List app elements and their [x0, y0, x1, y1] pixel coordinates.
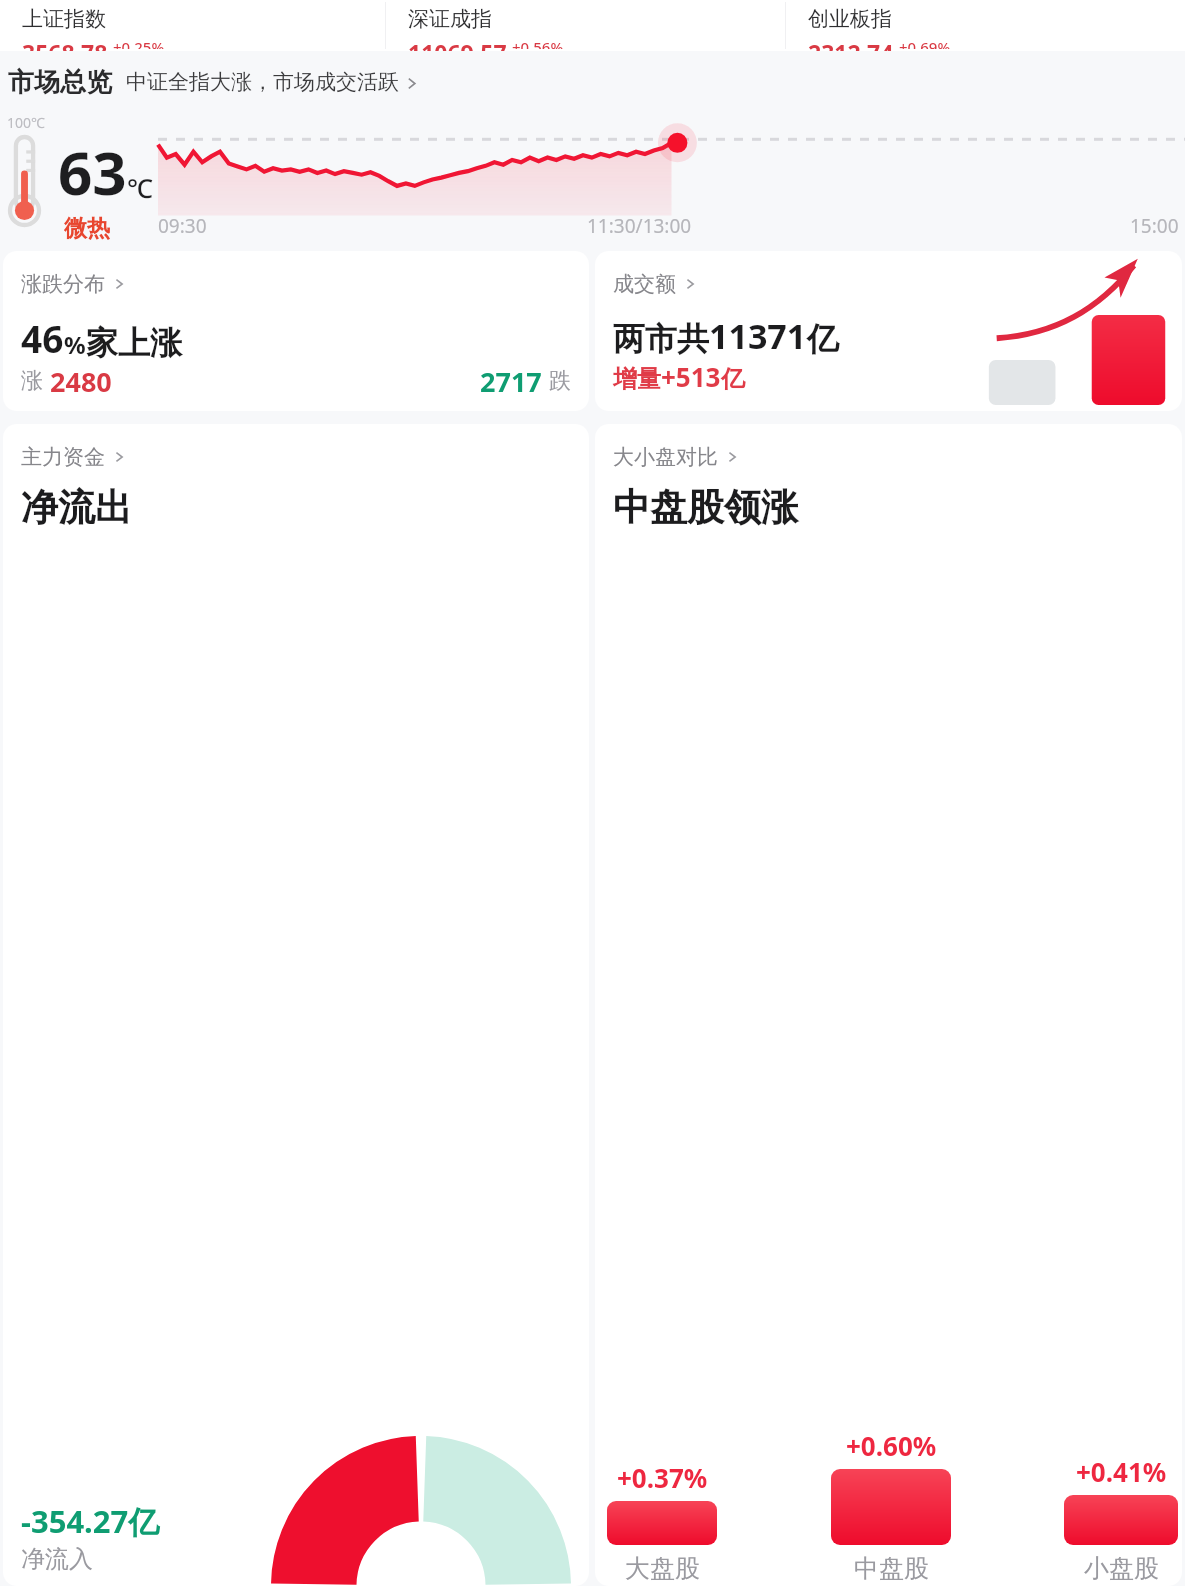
staticText: 2717: [480, 363, 542, 395]
staticText: 微热: [64, 214, 110, 241]
staticText: 15:00: [1130, 213, 1179, 239]
staticText: 上证指数: [22, 6, 106, 32]
staticText: 大盘股: [625, 1553, 700, 1584]
staticText: 2480: [50, 363, 112, 395]
staticText: 小盘股: [1084, 1553, 1159, 1584]
staticText: 市场总览: [8, 66, 112, 99]
staticText: 深证成指: [408, 6, 492, 32]
staticText: 家上涨: [86, 323, 182, 363]
staticText: 11371: [709, 313, 807, 359]
staticText: 100℃: [7, 113, 45, 132]
staticText: %: [64, 328, 86, 361]
staticText: +0.37%: [617, 1460, 708, 1495]
staticText: 中证全指大涨，市场成交活跃: [126, 69, 399, 95]
staticText: 63: [58, 131, 127, 213]
staticText: 11:30/13:00: [587, 213, 692, 239]
button[interactable]: 深证成指: [386, 0, 785, 51]
staticText: 3568.78: [22, 37, 108, 51]
other: Market temperature: [9, 137, 42, 225]
button[interactable]: 市场总览: [0, 51, 1185, 113]
staticText: 两市共: [613, 319, 709, 359]
staticText: +0.60%: [846, 1428, 937, 1463]
staticText: +0.41%: [1076, 1454, 1167, 1489]
staticText: ℃: [127, 170, 153, 205]
staticText: 2312.74: [808, 37, 894, 51]
staticText: 亿: [721, 364, 745, 394]
button[interactable]: 上证指数: [0, 0, 385, 51]
staticText: 净流入: [21, 1544, 93, 1574]
staticText: 成交额: [613, 271, 676, 297]
staticText: 亿: [807, 319, 839, 359]
staticText: 净流出: [21, 484, 132, 531]
staticText: 增量: [613, 364, 661, 394]
staticText: 跌: [549, 367, 571, 395]
staticText: 中盘股领涨: [613, 484, 798, 531]
staticText: +0.69%: [899, 37, 951, 49]
staticText: +0.56%: [512, 37, 564, 49]
staticText: 46: [21, 313, 64, 363]
staticText: 涨: [21, 367, 43, 395]
button[interactable]: 成交额: [595, 251, 1182, 411]
staticText: 主力资金: [21, 444, 105, 470]
button[interactable]: 主力资金: [3, 424, 589, 1586]
staticText: 创业板指: [808, 6, 892, 32]
button[interactable]: 涨跌分布: [3, 251, 589, 411]
button[interactable]: 大小盘对比: [595, 424, 1182, 1586]
staticText: +513: [661, 359, 721, 394]
staticText: 大小盘对比: [613, 444, 718, 470]
staticText: 09:30: [158, 213, 207, 239]
staticText: 涨跌分布: [21, 271, 105, 297]
button[interactable]: 创业板指: [786, 0, 1185, 51]
staticText: +0.25%: [113, 37, 165, 49]
staticText: -354.27亿: [21, 1500, 160, 1542]
staticText: 11069.57: [408, 37, 507, 51]
staticText: 中盘股: [854, 1553, 929, 1584]
